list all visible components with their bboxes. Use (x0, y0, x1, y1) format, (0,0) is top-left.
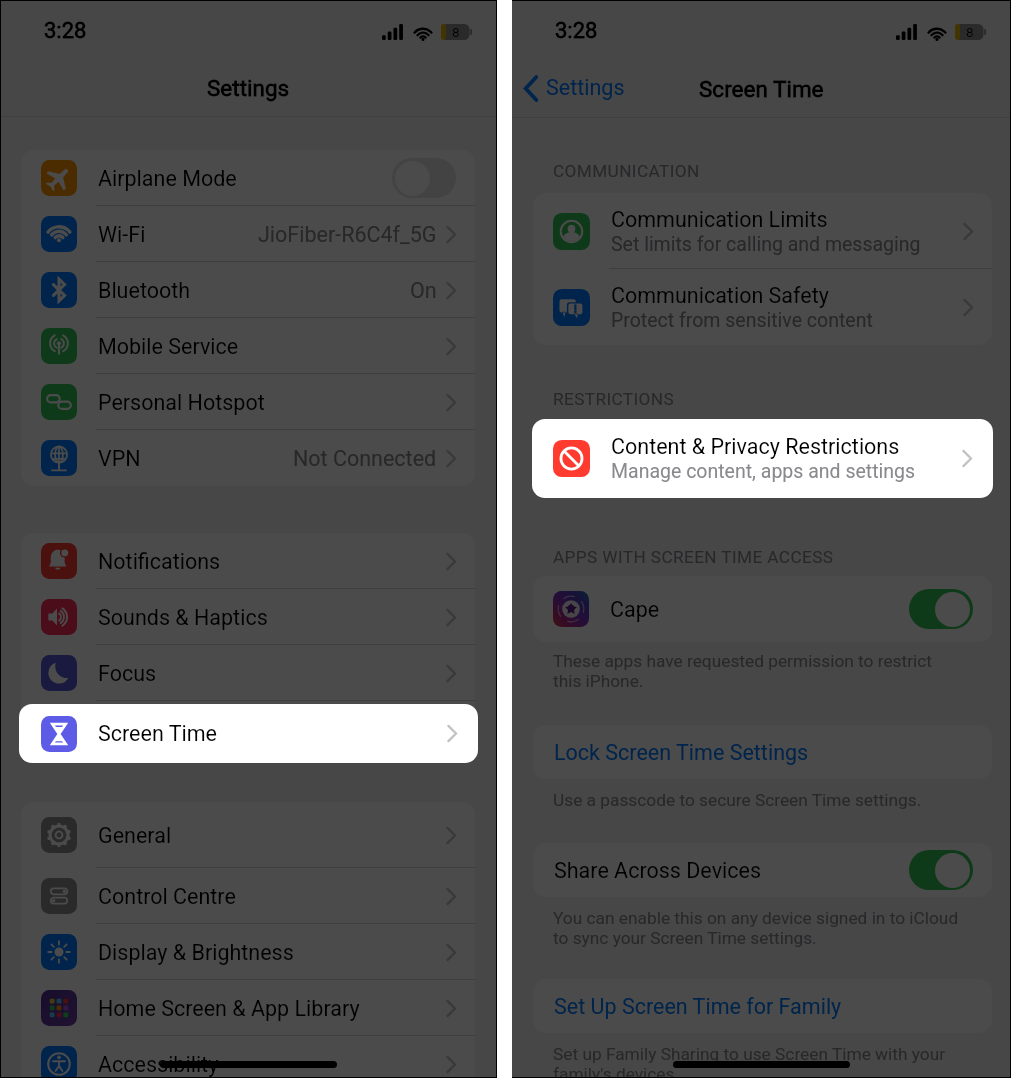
staticText: Communication Limits (611, 207, 828, 232)
button[interactable]: Communication Limits (533, 193, 992, 269)
staticText: 8 (452, 24, 460, 40)
staticText: RESTRICTIONS (553, 389, 675, 409)
button[interactable]: Lock Screen Time Settings (533, 725, 992, 779)
staticText: These apps have requested permission to … (553, 651, 986, 691)
staticText: You can enable this on any device signed… (553, 908, 998, 948)
button[interactable]: Mobile Service (21, 318, 475, 374)
button[interactable]: Bluetooth (21, 262, 475, 318)
staticText: Set up Family Sharing to use Screen Time… (553, 1044, 998, 1077)
staticText: Home Screen & App Library (98, 996, 360, 1021)
staticText: Communication Safety (611, 283, 829, 308)
staticText: On (410, 278, 437, 303)
button[interactable]: Back (524, 76, 625, 101)
button[interactable]: Screen Time (21, 701, 475, 757)
staticText: APPS WITH SCREEN TIME ACCESS (553, 547, 834, 567)
button[interactable]: On (909, 589, 973, 629)
button[interactable]: Communication Safety (533, 269, 992, 345)
button[interactable]: Set Up Screen Time for Family (533, 979, 992, 1033)
staticText: Manage content, apps and settings (611, 460, 916, 483)
button[interactable]: VPN (21, 430, 475, 486)
staticText: Set Up Screen Time for Family (554, 994, 842, 1019)
button[interactable]: Personal Hotspot (21, 374, 475, 430)
button[interactable]: Display & Brightness (21, 924, 475, 980)
staticText: Screen Time (98, 717, 218, 742)
button[interactable]: Wi-Fi (21, 206, 475, 262)
button[interactable]: Accessibility (21, 1036, 475, 1077)
button[interactable]: Home Screen & App Library (21, 980, 475, 1036)
button[interactable]: Control Centre (21, 868, 475, 924)
staticText: Wi-Fi (98, 222, 146, 247)
staticText: Sounds & Haptics (98, 605, 268, 630)
staticText: Personal Hotspot (98, 390, 265, 415)
staticText: Lock Screen Time Settings (554, 740, 809, 765)
button[interactable]: Focus (21, 645, 475, 701)
button[interactable]: Share Across Devices (533, 843, 992, 897)
staticText: COMMUNICATION (553, 161, 700, 181)
staticText: 8 (966, 24, 974, 40)
staticText: Manage content, apps and settings (611, 462, 916, 485)
button[interactable]: Notifications (21, 533, 475, 589)
staticText: Use a passcode to secure Screen Time set… (553, 790, 986, 810)
staticText: Notifications (98, 549, 221, 574)
staticText: Airplane Mode (98, 166, 237, 191)
staticText: Screen Time (699, 76, 824, 102)
button[interactable]: On (909, 850, 973, 890)
button[interactable]: General (21, 802, 475, 868)
button[interactable]: Airplane Mode (21, 150, 475, 206)
button[interactable]: Sounds & Haptics (21, 589, 475, 645)
staticText: General (98, 823, 172, 848)
staticText: Settings (207, 75, 290, 101)
button[interactable]: Cape (533, 576, 992, 642)
staticText: Screen Time (98, 721, 218, 746)
staticText: Content & Privacy Restrictions (611, 434, 900, 459)
staticText: Protect from sensitive content (611, 309, 873, 332)
button[interactable]: Screen Time (19, 704, 478, 763)
staticText: Accessibility (98, 1052, 219, 1077)
staticText: Bluetooth (98, 278, 191, 303)
staticText: Mobile Service (98, 334, 239, 359)
staticText: Share Across Devices (554, 858, 762, 883)
staticText: Focus (98, 661, 157, 686)
staticText: JioFiber-R6C4f_5G (258, 222, 437, 247)
staticText: Control Centre (98, 884, 236, 909)
button[interactable]: Off (392, 158, 456, 198)
staticText: Cape (610, 597, 660, 622)
button[interactable]: Content & Privacy Restrictions (532, 419, 993, 498)
staticText: Set limits for calling and messaging (611, 233, 921, 256)
staticText: 3:28 (44, 18, 87, 44)
other: Back (524, 76, 538, 101)
staticText: Content & Privacy Restrictions (611, 436, 900, 461)
staticText: VPN (98, 446, 141, 471)
staticText: Settings (546, 75, 625, 100)
staticText: Display & Brightness (98, 940, 294, 965)
staticText: Not Connected (293, 446, 437, 471)
staticText: 3:28 (555, 18, 598, 44)
button[interactable]: Content & Privacy Restrictions (533, 422, 992, 498)
